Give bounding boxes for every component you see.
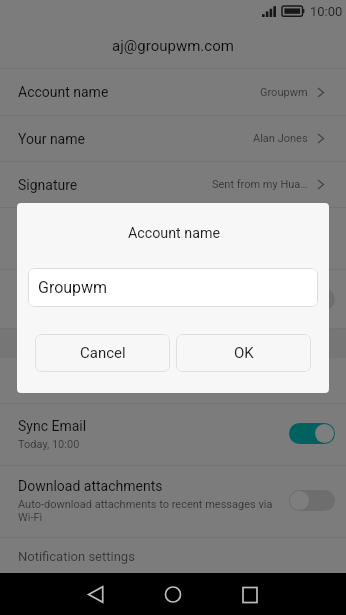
staticText: Signature (18, 177, 78, 193)
staticText: Last synced 09:58 (18, 303, 274, 316)
button[interactable]: Off (289, 490, 335, 511)
staticText: Groupwm (260, 86, 308, 99)
staticText: Sent from my Hua… (212, 178, 308, 191)
staticText: Groupwm (38, 278, 108, 297)
staticText: Cancel (80, 344, 126, 362)
button[interactable]: Cancel (35, 334, 170, 372)
staticText: Notification settings (18, 549, 135, 564)
button[interactable]: On (289, 423, 335, 444)
button[interactable]: Off (289, 289, 335, 310)
button[interactable]: Server settings (0, 358, 346, 403)
button[interactable]: Download attachments (0, 466, 346, 537)
staticText: Download attachments (18, 478, 163, 494)
staticText: Sync calendar (18, 283, 106, 299)
button[interactable]: OK (176, 334, 311, 372)
staticText: Account name (18, 84, 109, 100)
staticText: Today, 10:00 (18, 438, 274, 451)
staticText: aj@groupwm.com (112, 37, 234, 55)
button[interactable]: Back (75, 573, 117, 615)
staticText: Auto-download attachments to recent mess… (18, 498, 276, 523)
staticText: Account name (18, 225, 329, 242)
staticText: 10:00 (310, 4, 343, 19)
button[interactable]: Sync contacts (0, 208, 346, 269)
button[interactable]: Home (152, 573, 194, 615)
button[interactable]: Account name (0, 69, 346, 115)
button[interactable]: Sync Email (0, 404, 346, 465)
button[interactable]: Recent apps (229, 573, 271, 615)
button[interactable]: Signature (0, 162, 346, 207)
staticText: Alan Jones (253, 132, 308, 145)
button[interactable]: Your name (0, 116, 346, 161)
button[interactable]: Sync calendar (0, 270, 346, 328)
staticText: OK (234, 344, 254, 362)
staticText: Your name (18, 131, 85, 147)
staticText: Sync Email (18, 418, 87, 434)
